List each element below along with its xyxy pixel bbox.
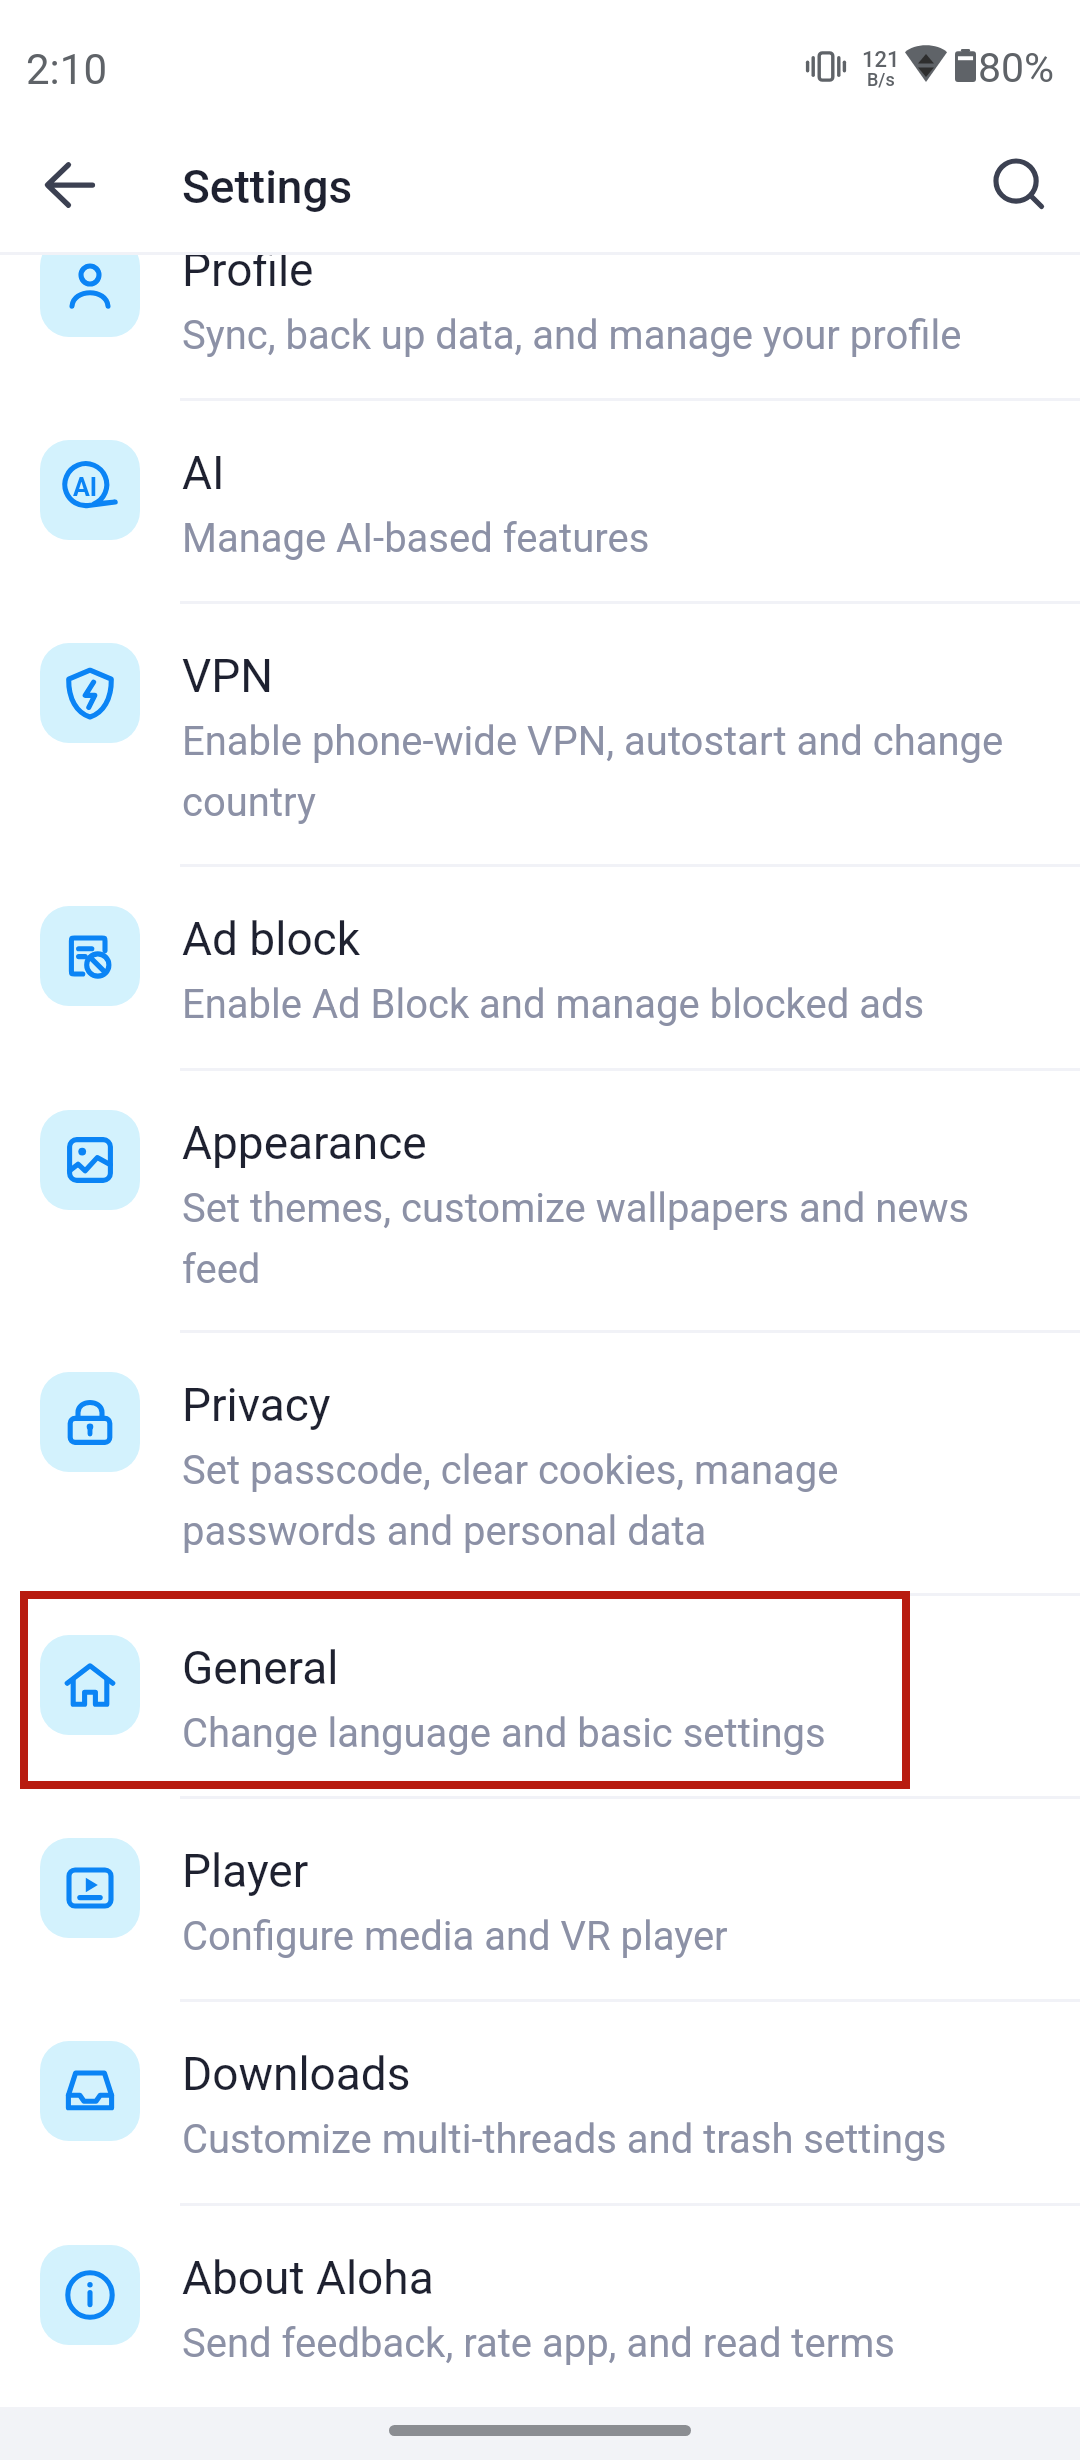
button[interactable]: General — [0, 1593, 1080, 1796]
staticText: Privacy — [182, 1378, 331, 1432]
staticText: Set passcode, clear cookies, manage pass… — [182, 1447, 1040, 1554]
staticText: B/s — [867, 69, 895, 90]
button[interactable]: About Aloha — [0, 2203, 1080, 2407]
staticText: Set themes, customize wallpapers and new… — [182, 1185, 1040, 1292]
staticText: Player — [182, 1844, 309, 1898]
button[interactable]: Player — [0, 1796, 1080, 1999]
staticText: 2:10 — [26, 45, 107, 94]
staticText: Manage AI-based features — [182, 515, 650, 562]
staticText: Sync, back up data, and manage your prof… — [182, 312, 962, 359]
button[interactable]: Downloads — [0, 1999, 1080, 2203]
button[interactable]: Search — [969, 134, 1069, 234]
staticText: General — [182, 1641, 339, 1695]
button[interactable]: Profile — [0, 255, 1080, 398]
staticText: Ad block — [182, 912, 361, 966]
staticText: 121 — [862, 47, 900, 73]
staticText: AI — [73, 473, 98, 502]
staticText: Enable Ad Block and manage blocked ads — [182, 981, 925, 1028]
staticText: Settings — [182, 160, 353, 214]
staticText: Customize multi-threads and trash settin… — [182, 2116, 947, 2163]
staticText: Profile — [182, 255, 314, 297]
staticText: AI — [182, 446, 225, 500]
button[interactable]: Ad block — [0, 864, 1080, 1068]
staticText: About Aloha — [182, 2251, 434, 2305]
button[interactable]: Back — [20, 135, 120, 235]
staticText: Downloads — [182, 2047, 411, 2101]
staticText: Send feedback, rate app, and read terms — [182, 2320, 895, 2367]
staticText: Configure media and VR player — [182, 1913, 728, 1960]
button[interactable]: Privacy — [0, 1330, 1080, 1593]
staticText: Appearance — [182, 1116, 427, 1170]
button[interactable]: Appearance — [0, 1068, 1080, 1330]
staticText: 80% — [978, 44, 1055, 92]
staticText: Enable phone-wide VPN, autostart and cha… — [182, 718, 1040, 825]
staticText: Change language and basic settings — [182, 1710, 826, 1757]
staticText: VPN — [182, 649, 274, 703]
button[interactable]: AI — [0, 398, 1080, 601]
button[interactable]: VPN — [0, 601, 1080, 864]
